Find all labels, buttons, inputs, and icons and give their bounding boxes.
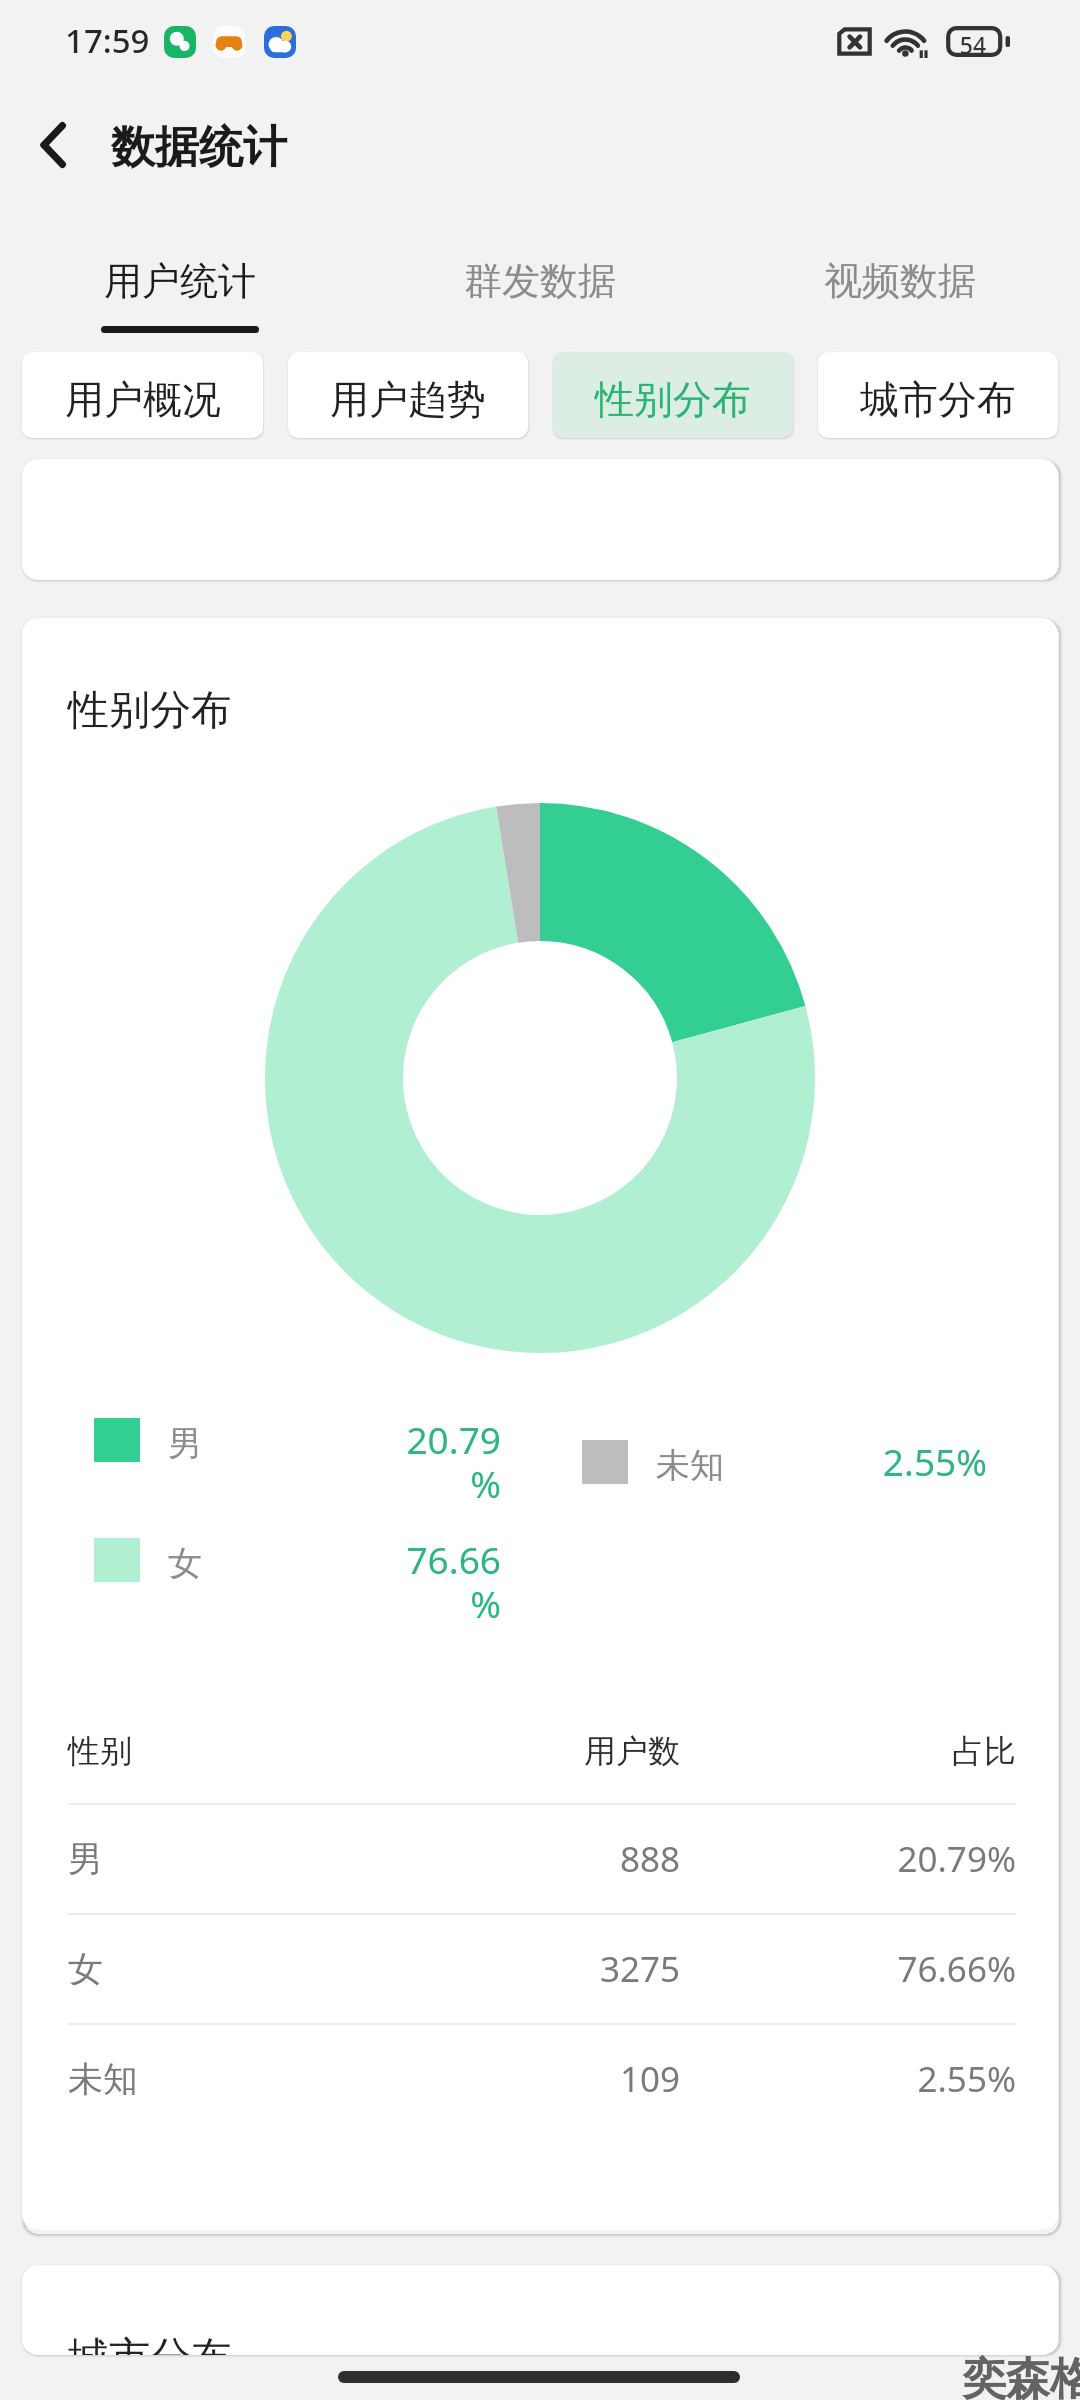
staticText: 性别分布: [595, 375, 751, 424]
staticText: 视频数据: [824, 257, 976, 305]
staticText: 性别: [68, 1731, 403, 1771]
staticText: 男: [68, 1837, 403, 1881]
button[interactable]: 女: [68, 1915, 1016, 2023]
button[interactable]: 性别分布: [553, 352, 793, 438]
button[interactable]: 用户趋势: [288, 352, 528, 438]
button[interactable]: 群发数据: [360, 230, 720, 345]
staticText: 20.79%: [680, 1835, 1016, 1883]
button[interactable]: 男: [94, 1400, 498, 1510]
staticText: 男: [168, 1422, 202, 1465]
staticText: 3275: [403, 1945, 680, 1993]
staticText: 未知: [68, 2057, 403, 2101]
button[interactable]: 女: [94, 1520, 498, 1630]
staticText: 用户数: [403, 1731, 680, 1771]
button[interactable]: 用户统计: [0, 230, 360, 345]
staticText: 76.66%: [680, 1945, 1016, 1993]
staticText: 女: [168, 1542, 202, 1585]
button[interactable]: 用户概况: [22, 352, 263, 438]
staticText: 888: [403, 1835, 680, 1883]
staticText: 76.66%: [389, 1534, 501, 1628]
staticText: 20.79%: [389, 1414, 501, 1508]
staticText: 用户统计: [104, 257, 256, 305]
button[interactable]: 未知: [68, 2025, 1016, 2133]
staticText: 性别分布: [68, 685, 232, 737]
staticText: 未知: [656, 1444, 724, 1487]
staticText: 城市分布: [860, 375, 1016, 424]
staticText: 用户趋势: [330, 375, 486, 424]
staticText: 109: [403, 2055, 680, 2103]
staticText: 城市分布: [68, 2332, 232, 2355]
button[interactable]: 男: [68, 1805, 1016, 1913]
staticText: 2.55%: [875, 1436, 987, 1486]
staticText: 占比: [680, 1731, 1016, 1771]
staticText: 群发数据: [464, 257, 616, 305]
button[interactable]: 未知: [582, 1422, 984, 1532]
button[interactable]: Back: [18, 95, 88, 195]
staticText: 2.55%: [680, 2055, 1016, 2103]
staticText: 奕森格: [962, 2352, 1080, 2400]
button[interactable]: 视频数据: [720, 230, 1080, 345]
staticText: 54: [949, 29, 997, 60]
button[interactable]: 城市分布: [818, 352, 1058, 438]
staticText: 数据统计: [111, 120, 287, 175]
staticText: 17:59: [65, 18, 150, 63]
staticText: 女: [68, 1947, 403, 1991]
staticText: 用户概况: [65, 375, 221, 424]
